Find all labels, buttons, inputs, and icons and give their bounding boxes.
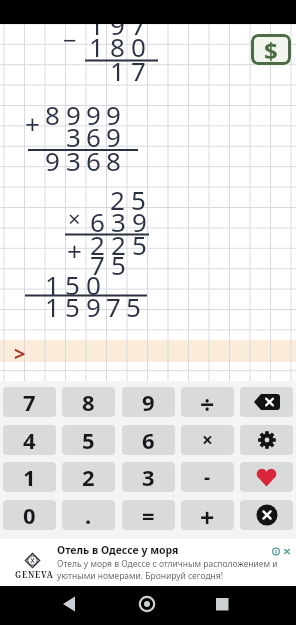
staticText: 5 xyxy=(82,425,95,455)
staticText: − xyxy=(63,23,77,55)
staticText: Отель в Одессе у моря xyxy=(57,543,179,557)
staticText: 2 xyxy=(90,227,105,259)
staticText: 7 xyxy=(106,289,121,321)
staticText: $ xyxy=(264,34,278,65)
staticText: 6 xyxy=(86,119,101,151)
staticText: 9 xyxy=(106,97,121,129)
staticText: 8 xyxy=(110,29,125,61)
staticText: 9 xyxy=(110,7,125,39)
staticText: × xyxy=(202,427,213,453)
staticText: 2 xyxy=(110,182,125,214)
button[interactable] xyxy=(58,592,82,616)
button[interactable]: 5 xyxy=(62,425,115,455)
button[interactable]: 1 xyxy=(3,462,56,492)
button[interactable]: 0 xyxy=(3,500,56,530)
button[interactable]: 3 xyxy=(122,462,175,492)
button[interactable]: - xyxy=(181,462,234,492)
staticText: - xyxy=(204,464,211,490)
button[interactable]: 7 xyxy=(3,387,56,417)
staticText: 2 xyxy=(111,227,126,259)
button[interactable]: GENEVA xyxy=(0,539,296,586)
staticText: 3 xyxy=(142,462,155,492)
staticText: 3 xyxy=(66,143,81,175)
staticText: 6 xyxy=(86,143,101,175)
staticText: 5 xyxy=(132,227,147,259)
staticText: 1 xyxy=(45,289,60,321)
staticText: 9 xyxy=(86,97,101,129)
button[interactable]: 4 xyxy=(3,425,56,455)
staticText: 9 xyxy=(142,387,155,417)
staticText: + xyxy=(25,106,40,138)
staticText: уютными номерами. Бронируй сегодня! xyxy=(57,570,223,582)
staticText: 9 xyxy=(66,97,81,129)
staticText: 5 xyxy=(126,289,141,321)
staticText: 1 xyxy=(45,267,60,299)
staticText: 8 xyxy=(45,97,60,129)
staticText: 0 xyxy=(131,29,146,61)
staticText: GENEVA xyxy=(15,569,54,580)
staticText: 9 xyxy=(45,143,60,175)
staticText: 0 xyxy=(23,500,36,530)
staticText: 1 xyxy=(23,462,36,492)
button[interactable]: + xyxy=(181,500,234,530)
staticText: . xyxy=(85,500,92,530)
staticText: 9 xyxy=(86,289,101,321)
staticText: 8 xyxy=(82,387,95,417)
button[interactable]: > xyxy=(0,340,296,362)
button[interactable] xyxy=(210,592,234,616)
button[interactable] xyxy=(240,462,293,492)
staticText: + xyxy=(200,500,215,530)
staticText: 7 xyxy=(23,387,36,417)
staticText: 1 xyxy=(89,29,104,61)
button[interactable]: . xyxy=(62,500,115,530)
staticText: > xyxy=(14,340,26,362)
staticText: 5 xyxy=(65,289,80,321)
button[interactable]: × xyxy=(181,425,234,455)
staticText: 7 xyxy=(131,53,146,85)
staticText: Отель у моря в Одессе с отличным располо… xyxy=(57,558,278,570)
button[interactable]: 8 xyxy=(62,387,115,417)
staticText: 7 xyxy=(131,7,146,39)
button[interactable] xyxy=(240,387,293,417)
button[interactable]: ÷ xyxy=(181,387,234,417)
staticText: 9 xyxy=(132,204,147,236)
staticText: ÷ xyxy=(200,387,215,417)
staticText: 1 xyxy=(89,7,104,39)
button[interactable]: 9 xyxy=(122,387,175,417)
staticText: 0 xyxy=(86,267,101,299)
staticText: 6 xyxy=(142,425,155,455)
staticText: 3 xyxy=(66,119,81,151)
staticText: 2 xyxy=(82,462,95,492)
staticText: = xyxy=(142,500,155,530)
staticText: 5 xyxy=(65,267,80,299)
button[interactable]: 6 xyxy=(122,425,175,455)
button[interactable]: = xyxy=(122,500,175,530)
staticText: 1 xyxy=(110,53,125,85)
button[interactable]: $ xyxy=(251,34,291,65)
staticText: 3 xyxy=(111,204,126,236)
staticText: 5 xyxy=(111,247,126,279)
staticText: × xyxy=(68,203,81,233)
button[interactable] xyxy=(240,500,293,530)
button[interactable]: 2 xyxy=(62,462,115,492)
button[interactable] xyxy=(135,592,159,616)
staticText: 5 xyxy=(131,182,146,214)
staticText: 4 xyxy=(23,425,36,455)
staticText: 9 xyxy=(106,119,121,151)
staticText: + xyxy=(67,233,82,265)
staticText: 6 xyxy=(90,204,105,236)
staticText: 7 xyxy=(90,247,105,279)
staticText: 8 xyxy=(106,143,121,175)
button[interactable] xyxy=(240,425,293,455)
